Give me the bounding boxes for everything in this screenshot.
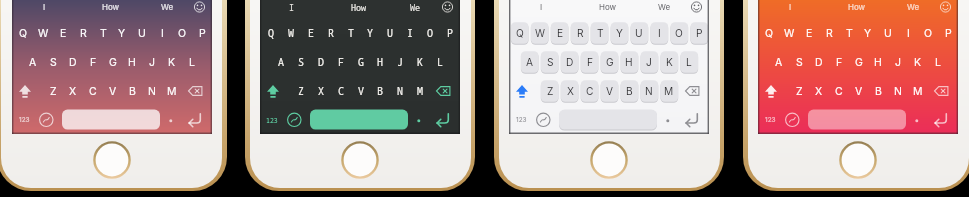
button[interactable]: Z [41, 83, 65, 99]
button[interactable]: I [32, 0, 56, 15]
button[interactable]: D [558, 54, 582, 70]
button[interactable]: T [837, 25, 861, 41]
button[interactable]: P [687, 25, 711, 41]
button[interactable]: A [21, 54, 45, 70]
button[interactable]: X [558, 83, 582, 99]
button[interactable]: V [598, 83, 622, 99]
button[interactable]: Q [757, 25, 781, 41]
button[interactable]: R [319, 25, 343, 41]
button[interactable]: P [190, 25, 214, 41]
button[interactable]: L [926, 54, 950, 70]
button[interactable]: D [61, 54, 85, 70]
button[interactable]: I [280, 0, 304, 15]
button[interactable]: V [349, 83, 373, 99]
button[interactable]: W [279, 25, 303, 41]
button[interactable]: H [120, 54, 144, 70]
button[interactable]: K [160, 54, 184, 70]
button[interactable]: I [647, 25, 671, 41]
button[interactable]: F [578, 54, 602, 70]
button[interactable]: B [120, 83, 144, 99]
button[interactable]: V [847, 83, 871, 99]
button[interactable]: A [767, 54, 791, 70]
button[interactable]: 123 [509, 112, 533, 128]
button[interactable]: How [99, 0, 123, 15]
button[interactable]: I [778, 0, 802, 15]
button[interactable]: U [130, 25, 154, 41]
button[interactable]: O [667, 25, 691, 41]
button[interactable]: J [637, 54, 661, 70]
button[interactable]: I [398, 25, 422, 41]
button[interactable]: 123 [260, 112, 284, 128]
button[interactable]: R [568, 25, 592, 41]
button[interactable]: C [827, 83, 851, 99]
button[interactable]: S [289, 54, 313, 70]
button[interactable]: W [528, 25, 552, 41]
button[interactable]: S [41, 54, 65, 70]
button[interactable]: G [598, 54, 622, 70]
button[interactable]: T [588, 25, 612, 41]
button[interactable]: I [529, 0, 553, 15]
button[interactable]: H [617, 54, 641, 70]
button[interactable]: K [906, 54, 930, 70]
button[interactable]: F [329, 54, 353, 70]
button[interactable]: C [578, 83, 602, 99]
button[interactable]: J [388, 54, 412, 70]
button[interactable]: E [299, 25, 323, 41]
button[interactable]: H [368, 54, 392, 70]
button[interactable]: S [538, 54, 562, 70]
button[interactable]: How [347, 0, 371, 15]
button[interactable]: Q [11, 25, 35, 41]
button[interactable]: R [817, 25, 841, 41]
button[interactable]: Y [607, 25, 631, 41]
button[interactable]: T [339, 25, 363, 41]
button[interactable]: V [101, 83, 125, 99]
button[interactable]: E [797, 25, 821, 41]
button[interactable]: T [91, 25, 115, 41]
button[interactable]: H [866, 54, 890, 70]
button[interactable]: X [807, 83, 831, 99]
button[interactable]: J [140, 54, 164, 70]
button[interactable]: C [81, 83, 105, 99]
button[interactable]: I [896, 25, 920, 41]
button[interactable]: N [388, 83, 412, 99]
button[interactable]: B [368, 83, 392, 99]
button[interactable]: 123 [12, 112, 36, 128]
button[interactable]: K [408, 54, 432, 70]
button[interactable]: Q [508, 25, 532, 41]
button[interactable]: B [617, 83, 641, 99]
button[interactable]: G [349, 54, 373, 70]
button[interactable]: Y [358, 25, 382, 41]
button[interactable]: L [180, 54, 204, 70]
button[interactable]: We [652, 0, 676, 15]
button[interactable]: Z [538, 83, 562, 99]
button[interactable]: N [140, 83, 164, 99]
button[interactable]: Z [289, 83, 313, 99]
button[interactable]: Z [787, 83, 811, 99]
button[interactable]: W [777, 25, 801, 41]
button[interactable]: S [787, 54, 811, 70]
button[interactable]: W [31, 25, 55, 41]
button[interactable]: B [866, 83, 890, 99]
button[interactable]: Y [856, 25, 880, 41]
button[interactable]: X [61, 83, 85, 99]
button[interactable]: X [309, 83, 333, 99]
button[interactable]: Y [110, 25, 134, 41]
button[interactable]: G [101, 54, 125, 70]
button[interactable]: O [916, 25, 940, 41]
button[interactable]: L [677, 54, 701, 70]
button[interactable]: O [170, 25, 194, 41]
button[interactable]: E [548, 25, 572, 41]
button[interactable]: M [408, 83, 432, 99]
button[interactable]: We [403, 0, 427, 15]
button[interactable]: M [906, 83, 930, 99]
button[interactable]: 123 [758, 112, 782, 128]
button[interactable]: M [657, 83, 681, 99]
button[interactable]: U [627, 25, 651, 41]
button[interactable]: F [81, 54, 105, 70]
button[interactable]: We [901, 0, 925, 15]
button[interactable]: N [637, 83, 661, 99]
button[interactable]: We [155, 0, 179, 15]
button[interactable]: C [329, 83, 353, 99]
button[interactable]: D [807, 54, 831, 70]
button[interactable]: P [438, 25, 462, 41]
